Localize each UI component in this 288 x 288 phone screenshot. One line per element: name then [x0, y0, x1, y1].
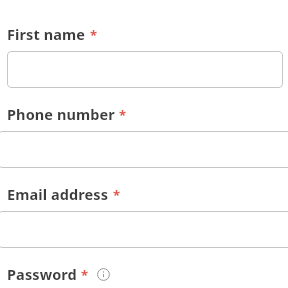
button[interactable]: More information about password requirem…: [97, 268, 110, 281]
staticText: *: [90, 26, 98, 44]
staticText: *: [113, 186, 121, 204]
staticText: *: [81, 266, 89, 284]
staticText: Email address: [7, 184, 109, 204]
button[interactable]: Phone number: [0, 131, 288, 168]
staticText: Phone number: [7, 104, 115, 124]
button[interactable]: Email address: [0, 211, 288, 248]
staticText: *: [119, 106, 127, 124]
staticText: First name: [7, 24, 86, 44]
staticText: Password: [7, 264, 77, 284]
button[interactable]: First name: [7, 51, 283, 88]
